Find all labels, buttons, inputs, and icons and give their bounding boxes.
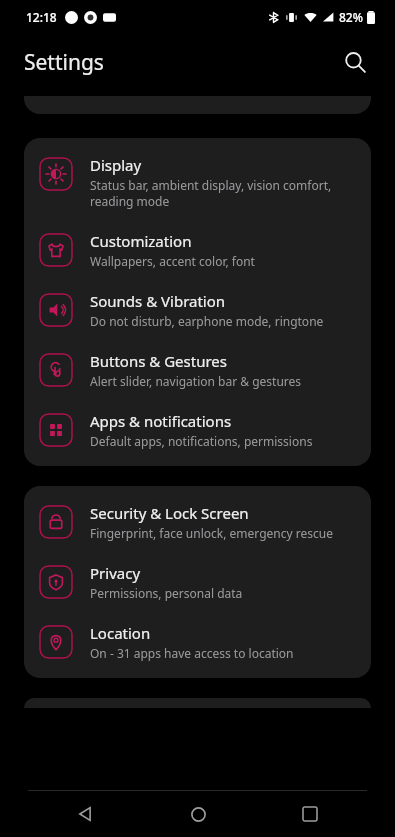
staticText: Sounds & Vibration <box>90 291 226 311</box>
staticText: Wallpapers, accent color, font <box>90 253 255 269</box>
button[interactable]: Back <box>58 791 112 837</box>
staticText: Display <box>90 155 142 175</box>
staticText: Fingerprint, face unlock, emergency resc… <box>90 525 333 541</box>
staticText: Permissions, personal data <box>90 585 243 601</box>
button[interactable]: Location <box>24 612 371 672</box>
button[interactable]: Home <box>171 791 225 837</box>
staticText: Settings <box>24 48 104 77</box>
staticText: Buttons & Gestures <box>90 351 227 371</box>
button[interactable]: Privacy <box>24 552 371 612</box>
button[interactable]: Security & Lock Screen <box>24 492 371 552</box>
staticText: Location <box>90 623 151 643</box>
button[interactable]: Apps & notifications <box>24 400 371 460</box>
staticText: Security & Lock Screen <box>90 503 249 523</box>
staticText: Customization <box>90 231 192 251</box>
staticText: Apps & notifications <box>90 411 232 431</box>
button[interactable]: Recent apps <box>283 791 337 837</box>
button[interactable]: Sounds & Vibration <box>24 280 371 340</box>
button[interactable]: Display <box>24 144 371 220</box>
button[interactable]: Search <box>333 40 377 84</box>
staticText: Do not disturb, earphone mode, ringtone <box>90 313 324 329</box>
staticText: Default apps, notifications, permissions <box>90 433 313 449</box>
staticText: 82% <box>339 9 363 25</box>
staticText: Status bar, ambient display, vision comf… <box>90 177 332 209</box>
staticText: On - 31 apps have access to location <box>90 645 294 661</box>
button[interactable]: Buttons & Gestures <box>24 340 371 400</box>
staticText: Privacy <box>90 563 141 583</box>
staticText: 12:18 <box>26 9 57 25</box>
staticText: Alert slider, navigation bar & gestures <box>90 373 302 389</box>
button[interactable]: Customization <box>24 220 371 280</box>
